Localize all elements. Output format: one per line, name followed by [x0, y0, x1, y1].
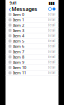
button[interactable]: Item 8 — [5, 54, 58, 60]
staticText: Item 10 — [13, 65, 26, 70]
button[interactable]: Item 6 — [5, 44, 58, 49]
staticText: Item 3 — [13, 28, 24, 33]
button[interactable]: ‹ — [8, 4, 10, 14]
staticText: Item 4 — [13, 33, 24, 38]
button[interactable]: Item 5 — [5, 38, 58, 44]
staticText: detail — [47, 71, 55, 74]
staticText: Messages — [11, 5, 37, 13]
staticText: Item 9 — [13, 59, 24, 65]
button[interactable]: Item 4 — [5, 33, 58, 38]
staticText: detail — [47, 39, 55, 43]
staticText: Item 7 — [13, 49, 24, 54]
button[interactable]: Search — [48, 7, 51, 10]
button[interactable]: Item 10 — [5, 65, 58, 70]
staticText: Item 6 — [13, 44, 24, 49]
button[interactable]: Item 0 — [5, 12, 58, 17]
button[interactable]: Item 9 — [5, 60, 58, 65]
staticText: detail — [47, 18, 55, 21]
staticText: Item 11 — [13, 70, 26, 75]
staticText: Item 2 — [13, 22, 24, 28]
staticText: detail — [47, 66, 55, 69]
staticText: detail — [47, 29, 55, 32]
staticText: ‹ — [8, 4, 10, 14]
staticText: detail — [47, 34, 55, 37]
staticText: 9:41 — [9, 0, 16, 6]
staticText: detail — [47, 60, 55, 64]
staticText: detail — [47, 55, 55, 59]
button[interactable]: Compose — [52, 7, 55, 10]
staticText: detail — [47, 44, 55, 48]
staticText: detail — [47, 23, 55, 27]
staticText: Item 8 — [13, 54, 24, 59]
staticText: Item 5 — [13, 38, 24, 44]
staticText: Item 0 — [13, 12, 24, 17]
staticText: detail — [47, 13, 55, 16]
button[interactable]: Item 3 — [5, 28, 58, 33]
button[interactable]: Item 2 — [5, 23, 58, 28]
staticText: Item 1 — [13, 17, 24, 22]
staticText: detail — [47, 50, 55, 53]
button[interactable]: Item 1 — [5, 17, 58, 23]
staticText: ▮▮▮ — [48, 1, 54, 5]
button[interactable]: Item 7 — [5, 49, 58, 54]
button[interactable]: Item 11 — [5, 70, 58, 76]
